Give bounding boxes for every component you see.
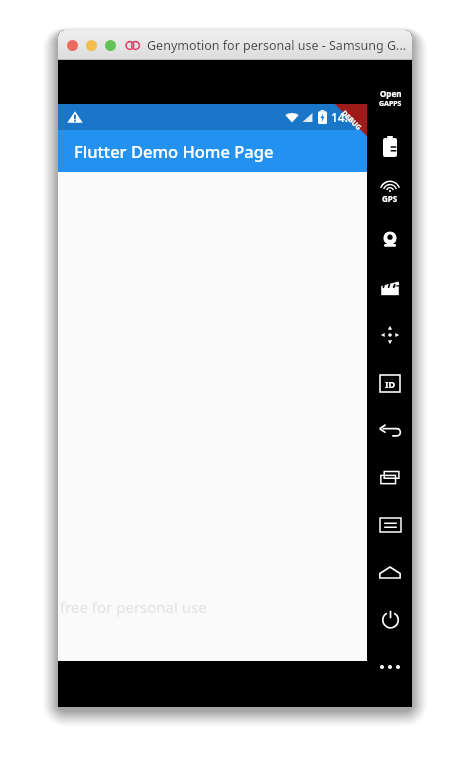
staticText: ID <box>385 378 396 390</box>
button[interactable]: Back <box>368 415 412 445</box>
staticText: DEBUG <box>339 109 364 133</box>
staticText: GAPPS <box>379 99 402 109</box>
button[interactable]: Recent apps <box>368 462 412 492</box>
button[interactable]: Menu <box>368 510 412 540</box>
staticText: free for personal use <box>60 597 207 617</box>
staticText: Genymotion for personal use - Samsung G.… <box>147 37 407 54</box>
button[interactable]: Open GApps <box>368 83 412 113</box>
button[interactable]: More <box>368 652 412 682</box>
button[interactable]: Home <box>368 557 412 587</box>
staticText: Flutter Demo Home Page <box>74 140 274 162</box>
staticText: GPS <box>382 193 398 204</box>
button[interactable]: Screen record <box>368 273 412 303</box>
button[interactable]: GPS <box>368 178 412 208</box>
button[interactable]: Battery <box>368 131 412 161</box>
staticText: 14:40 <box>331 109 362 125</box>
button[interactable]: Camera <box>368 225 412 255</box>
button[interactable]: Identifiers <box>368 368 412 398</box>
button[interactable]: Rotate / move <box>368 320 412 350</box>
button[interactable] <box>67 40 78 51</box>
button[interactable]: Flutter Demo Home Page <box>58 130 367 172</box>
button[interactable] <box>86 40 97 51</box>
button[interactable] <box>105 40 116 51</box>
staticText: Open <box>380 88 402 99</box>
button[interactable]: Power <box>368 604 412 634</box>
